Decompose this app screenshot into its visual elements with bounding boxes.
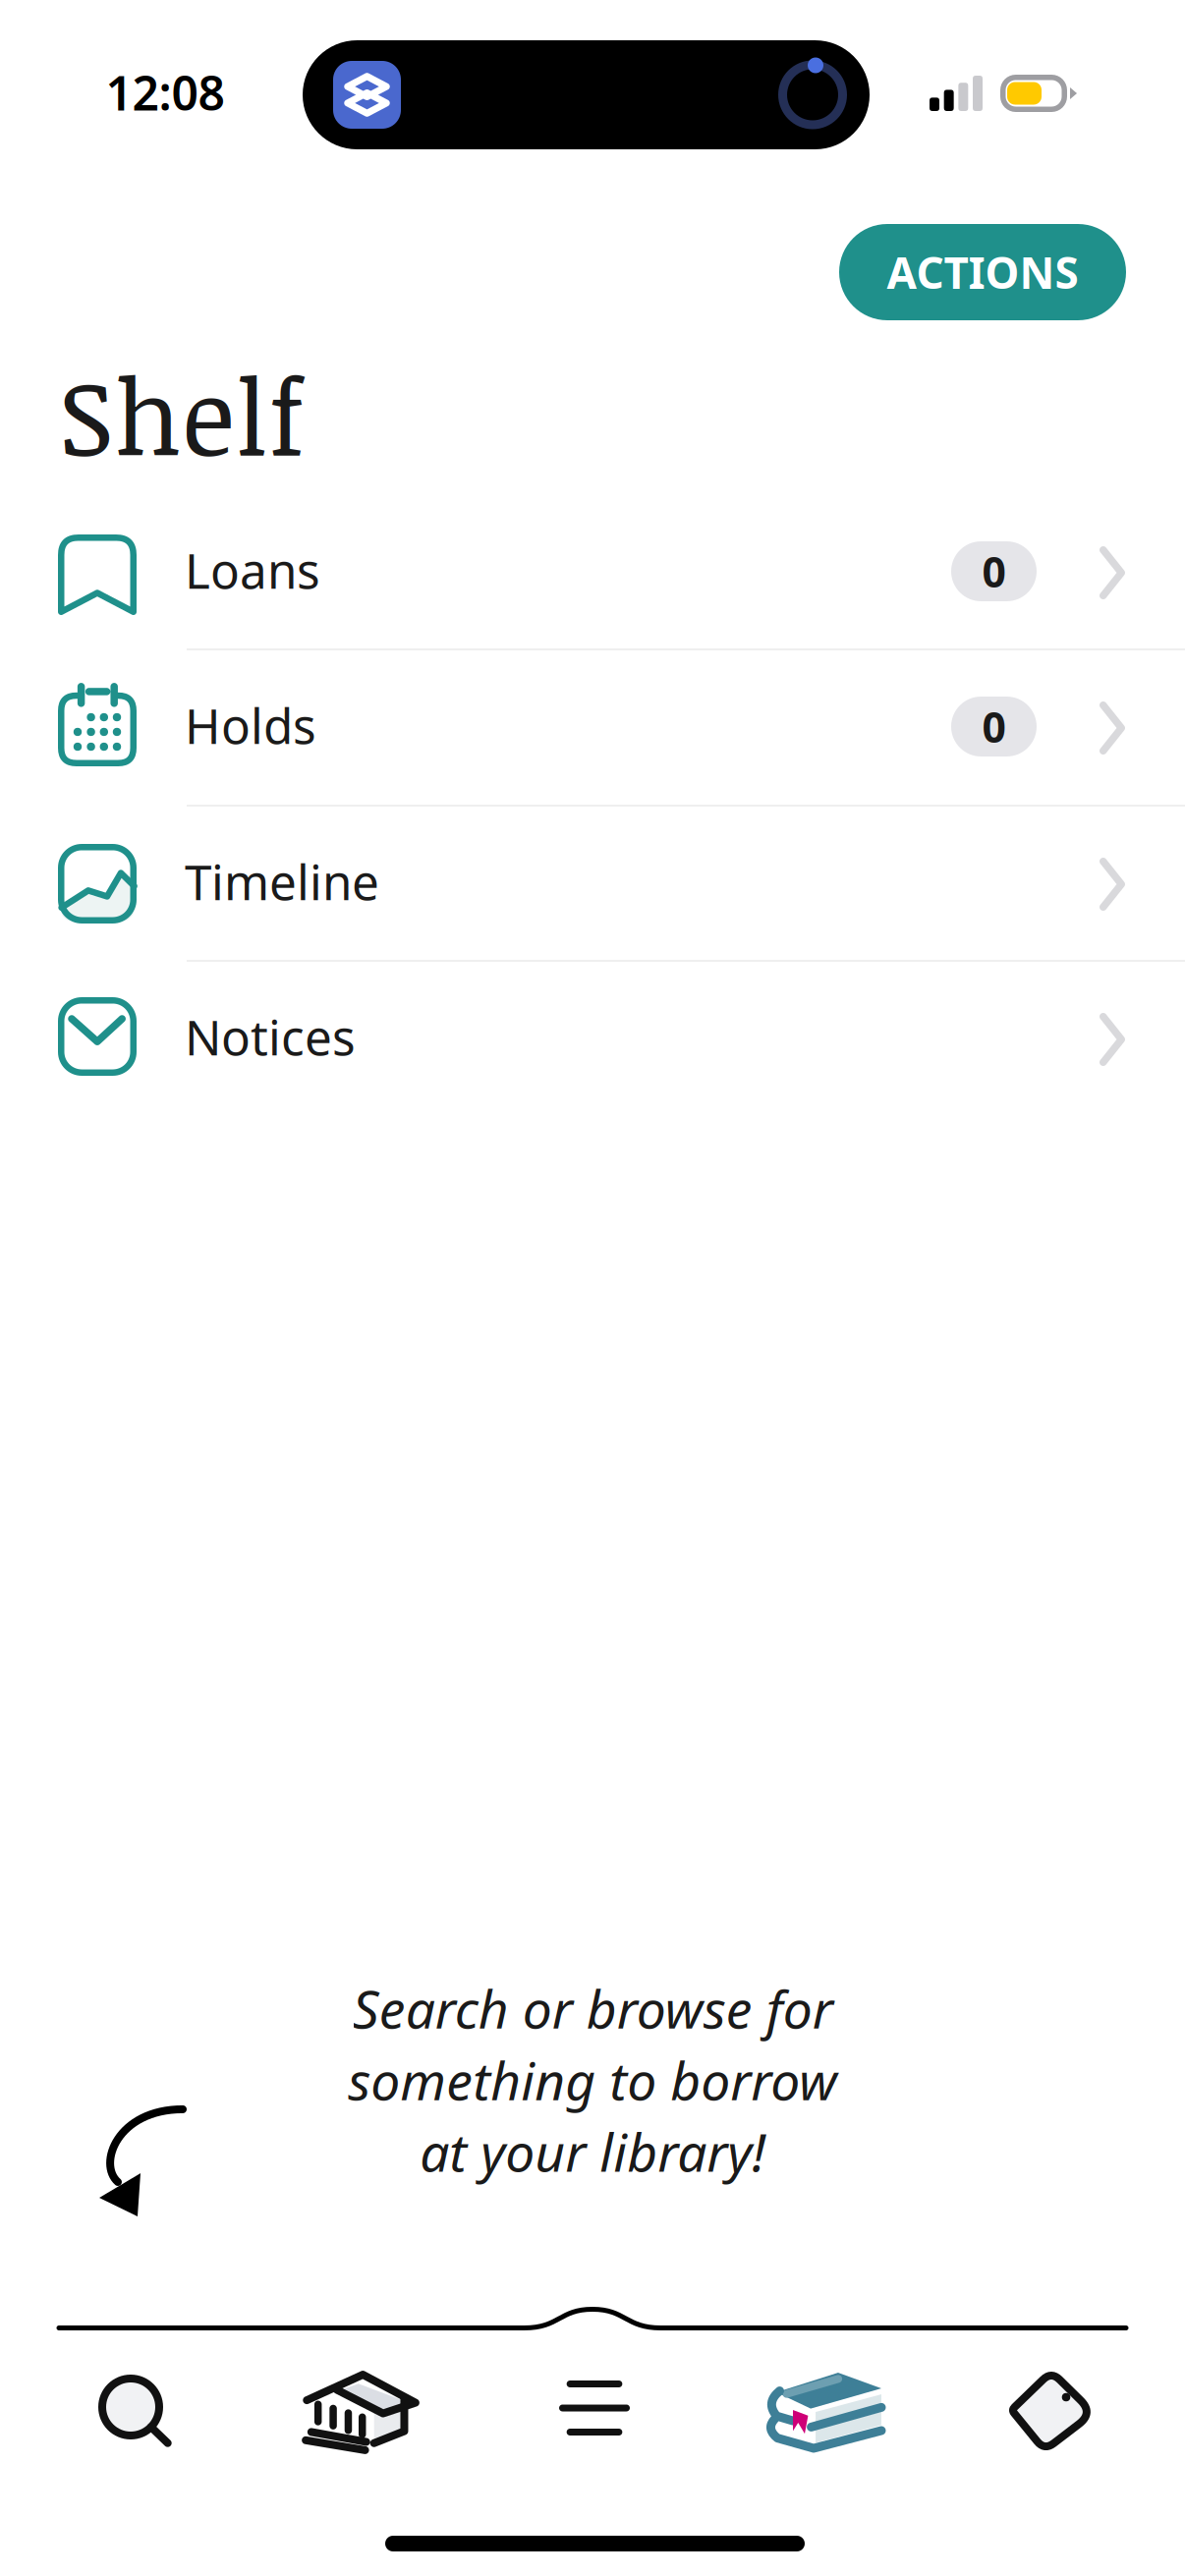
staticText: Shelf (59, 343, 306, 451)
button[interactable]: ACTIONS (839, 224, 1126, 320)
button[interactable]: Holds (0, 0, 1185, 155)
staticText: Loans (185, 538, 320, 602)
button[interactable]: Shelf (0, 0, 228, 116)
staticText: Notices (185, 1004, 356, 1069)
button[interactable]: Notices (0, 0, 1185, 155)
button[interactable]: Tags (0, 0, 228, 116)
staticText: 0 (982, 543, 1006, 599)
staticText: 0 (982, 699, 1006, 754)
staticText: Holds (185, 693, 316, 757)
staticText: Search or browse for something to borrow… (348, 1974, 837, 2186)
button[interactable]: Menu (0, 0, 228, 116)
staticText: ACTIONS (887, 243, 1078, 301)
button[interactable]: Library (0, 0, 228, 116)
button[interactable]: Timeline (0, 0, 1185, 155)
staticText: 12:08 (106, 61, 225, 124)
button[interactable]: Loans (0, 0, 1185, 155)
button[interactable]: Search (0, 0, 228, 116)
staticText: Timeline (185, 849, 379, 913)
